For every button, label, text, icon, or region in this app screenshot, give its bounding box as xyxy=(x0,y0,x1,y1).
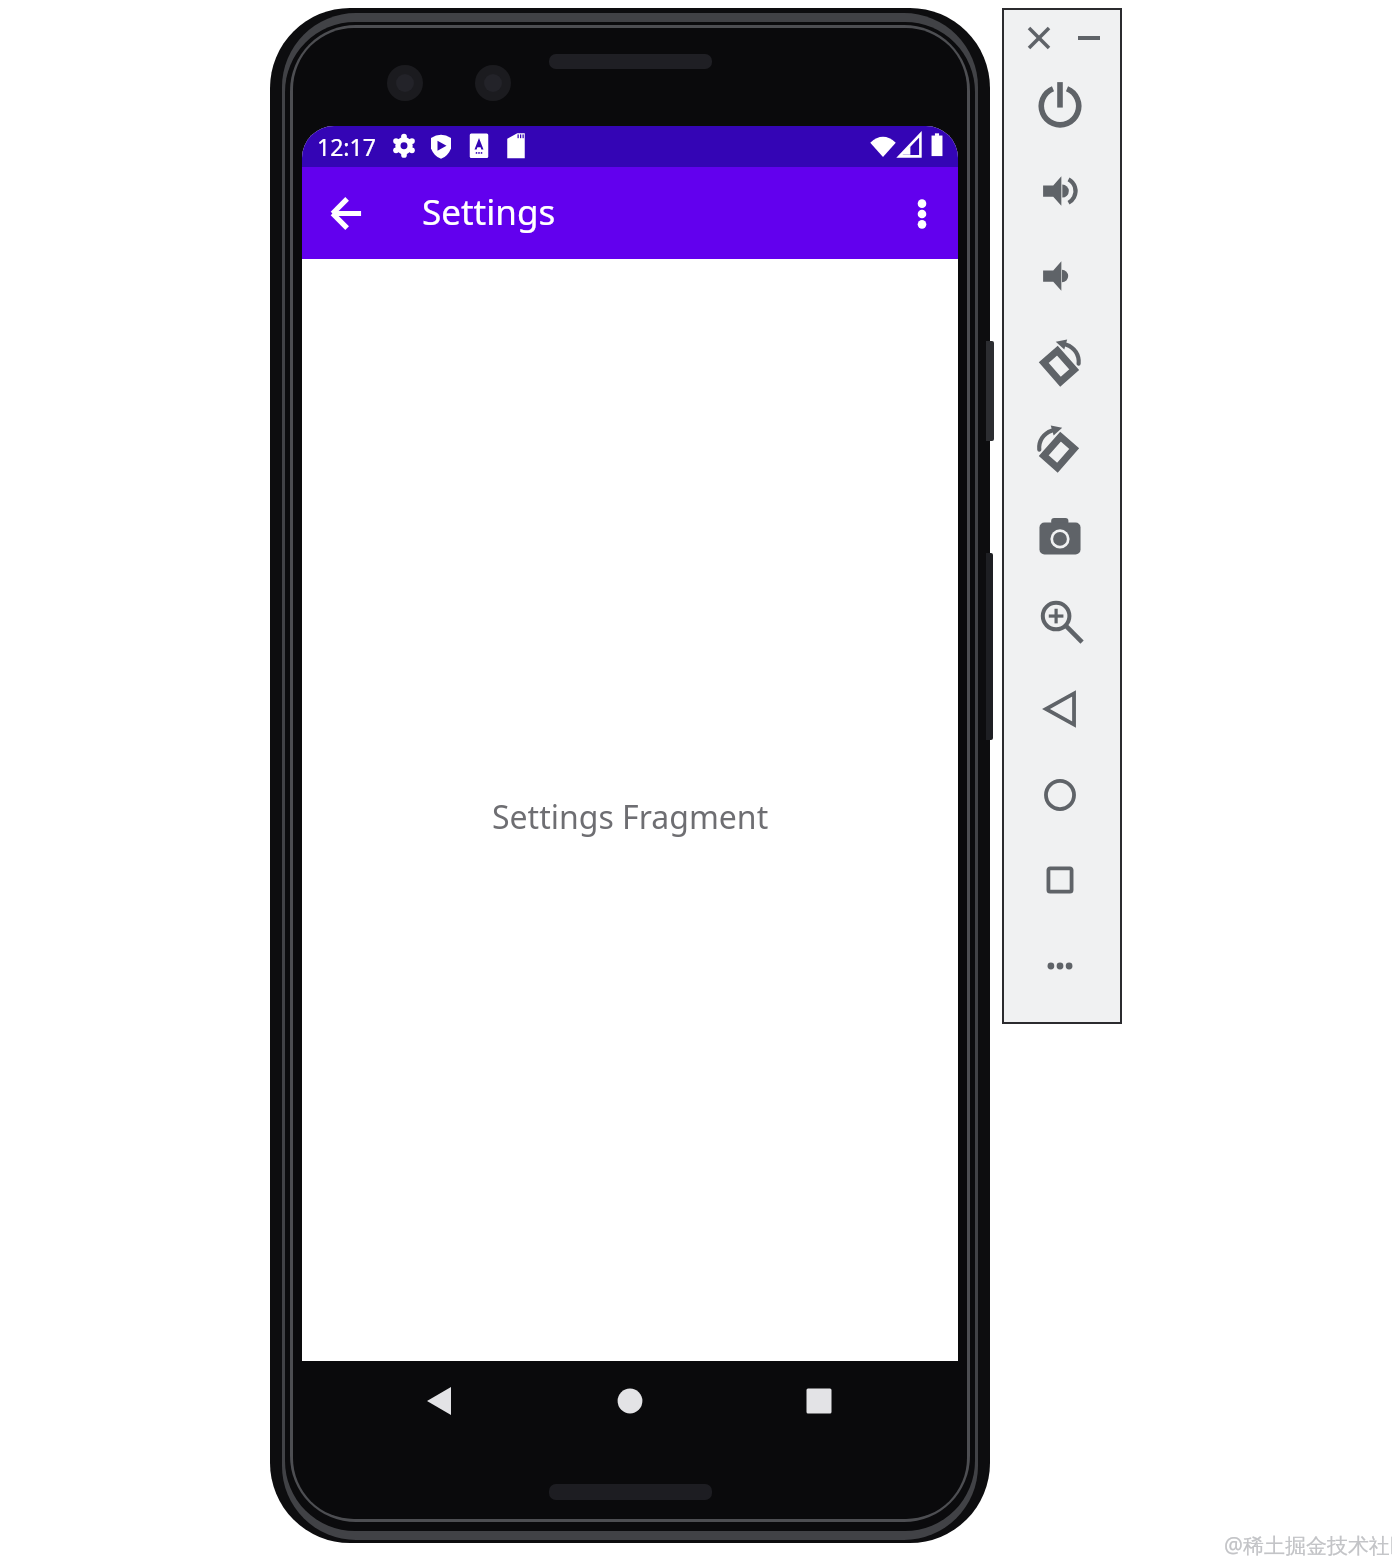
button[interactable]: Volume down xyxy=(1034,249,1086,301)
button[interactable]: Back xyxy=(1034,683,1086,735)
button[interactable]: Rotate left xyxy=(1034,336,1086,388)
staticText: Settings xyxy=(422,188,556,236)
button[interactable]: Rotate right xyxy=(1034,422,1086,474)
button[interactable]: Minimize xyxy=(1069,18,1109,58)
staticText: Settings Fragment xyxy=(492,795,769,839)
button[interactable]: Back xyxy=(411,1373,467,1429)
button[interactable]: Volume up xyxy=(1034,164,1086,216)
button[interactable]: Back xyxy=(314,181,378,245)
button[interactable]: Recent apps xyxy=(791,1373,847,1429)
button[interactable]: More xyxy=(1034,940,1086,992)
button[interactable]: Home xyxy=(1034,769,1086,821)
staticText: @稀土掘金技术社区 xyxy=(1224,1531,1392,1560)
button[interactable]: Zoom in xyxy=(1034,595,1086,647)
button[interactable]: More options xyxy=(893,185,950,242)
staticText: 12:17 xyxy=(317,131,376,162)
button[interactable]: Close xyxy=(1019,18,1059,58)
button[interactable]: Screenshot xyxy=(1034,507,1086,559)
button[interactable]: Power xyxy=(1034,78,1086,130)
button[interactable]: Overview xyxy=(1034,854,1086,906)
button[interactable]: Home xyxy=(602,1373,658,1429)
